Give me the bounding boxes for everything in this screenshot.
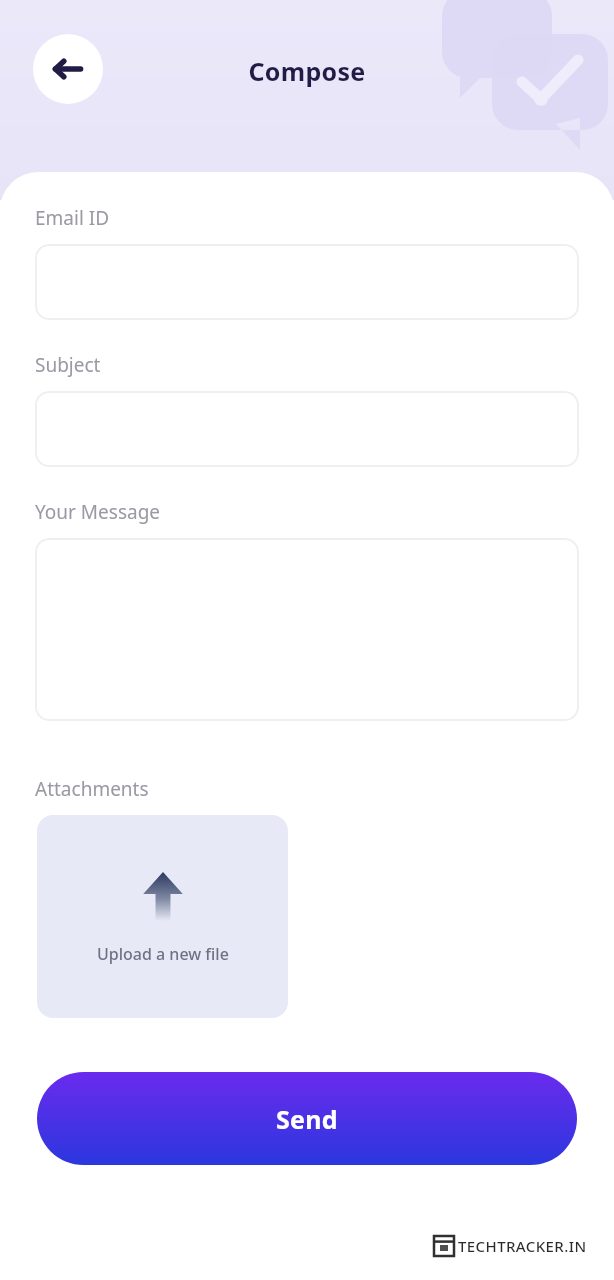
button[interactable]: Upload a new file (37, 815, 288, 1018)
button[interactable]: Back (33, 34, 103, 104)
button[interactable] (35, 391, 579, 467)
staticText: Upload a new file (97, 943, 229, 965)
staticText: Email ID (35, 205, 110, 231)
button[interactable]: Send (37, 1072, 577, 1165)
staticText: Your Message (35, 499, 161, 525)
staticText: Send (276, 1102, 338, 1136)
button[interactable] (35, 244, 579, 320)
staticText: Compose (0, 54, 614, 88)
staticText: Attachments (35, 776, 149, 802)
staticText: TECHTRACKER.IN (458, 1236, 587, 1256)
staticText: Subject (35, 352, 101, 378)
